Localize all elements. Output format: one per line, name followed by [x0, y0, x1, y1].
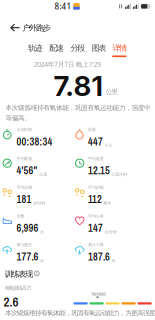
staticText: 步数: [16, 214, 24, 219]
staticText: /公里: [39, 172, 47, 177]
staticText: 步: [40, 230, 44, 234]
staticText: 447: [88, 135, 103, 149]
button[interactable]: 图表: [92, 43, 106, 53]
staticText: 4'56": [16, 163, 37, 177]
staticText: 厘米: [103, 201, 111, 206]
staticText: 公里: [106, 88, 118, 96]
staticText: 公里/小时: [111, 172, 128, 177]
staticText: 本次锻炼维持有氧体能，巩固有氧运动能力，强度中: [5, 104, 151, 112]
staticText: 有氧训练压力: [4, 285, 31, 291]
staticText: 米: [40, 258, 44, 263]
staticText: 00:38:34: [16, 135, 52, 149]
button[interactable]: 详情: [112, 43, 127, 53]
staticText: 147: [88, 221, 103, 235]
staticText: 2.6: [4, 293, 19, 310]
button[interactable]: 配速: [49, 43, 64, 53]
staticText: 分段: [70, 43, 85, 53]
staticText: 累计爬升: [16, 242, 32, 247]
staticText: 配速: [49, 43, 64, 53]
button[interactable]: [7, 21, 21, 35]
staticText: 平均步幅: [88, 185, 104, 190]
staticText: 运动时间: [16, 127, 32, 132]
staticText: 详情: [112, 43, 127, 53]
staticText: 训练表现: [4, 269, 33, 279]
staticText: 米: [111, 258, 115, 263]
staticText: 千卡: [104, 143, 112, 148]
staticText: 平均速度: [88, 156, 104, 161]
button[interactable]: 轨迹: [28, 43, 43, 53]
staticText: 等偏高。: [5, 114, 31, 122]
staticText: 8:41: [54, 1, 71, 12]
staticText: 6,996: [16, 221, 38, 235]
button[interactable]: 分段: [70, 43, 85, 53]
staticText: 步/分钟: [33, 200, 45, 206]
staticText: 户外跑步: [22, 23, 51, 33]
staticText: 177.6: [16, 250, 38, 264]
staticText: 2024年7月7日 晚上7:29: [34, 60, 101, 69]
staticText: 187.6: [88, 250, 110, 264]
staticText: 热量: [88, 127, 96, 132]
staticText: 平均配速: [16, 156, 32, 161]
staticText: 次/分钟: [104, 229, 117, 234]
staticText: 本次锻炼维持有氧体能，巩固有氧运动能力，为更高强度锻炼打: [5, 309, 155, 317]
staticText: 维持体能: [91, 292, 106, 297]
staticText: 112: [88, 192, 102, 206]
staticText: 平均心率: [88, 214, 104, 219]
staticText: 12.15: [88, 163, 110, 177]
staticText: 轨迹: [28, 43, 43, 53]
staticText: 181: [16, 192, 31, 206]
staticText: 平均步频: [16, 185, 32, 190]
staticText: 图表: [92, 43, 106, 53]
staticText: 累计下降: [88, 242, 104, 247]
staticText: 7.81: [53, 69, 103, 103]
